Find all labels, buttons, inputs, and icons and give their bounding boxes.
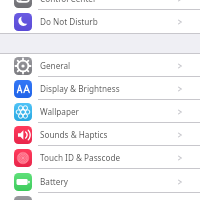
staticText: Battery — [40, 176, 69, 187]
button[interactable]: Wallpaper — [0, 100, 200, 123]
button[interactable]: Battery — [0, 170, 200, 193]
staticText: Touch ID & Passcode — [40, 152, 121, 163]
button[interactable]: Control Center — [0, 0, 200, 10]
button[interactable]: Sounds & Haptics — [0, 123, 200, 146]
button[interactable]: Do Not Disturb — [0, 10, 200, 33]
button[interactable]: Privacy — [0, 193, 200, 200]
button[interactable]: General — [0, 54, 200, 77]
staticText: General — [40, 60, 71, 71]
staticText: Do Not Disturb — [40, 16, 98, 27]
staticText: Sounds & Haptics — [40, 129, 108, 140]
button[interactable]: Display & Brightness — [0, 77, 200, 100]
staticText: Display & Brightness — [40, 83, 120, 94]
staticText: Control Center — [40, 0, 97, 4]
button[interactable]: Touch ID & Passcode — [0, 146, 200, 169]
staticText: Wallpaper — [40, 106, 79, 117]
